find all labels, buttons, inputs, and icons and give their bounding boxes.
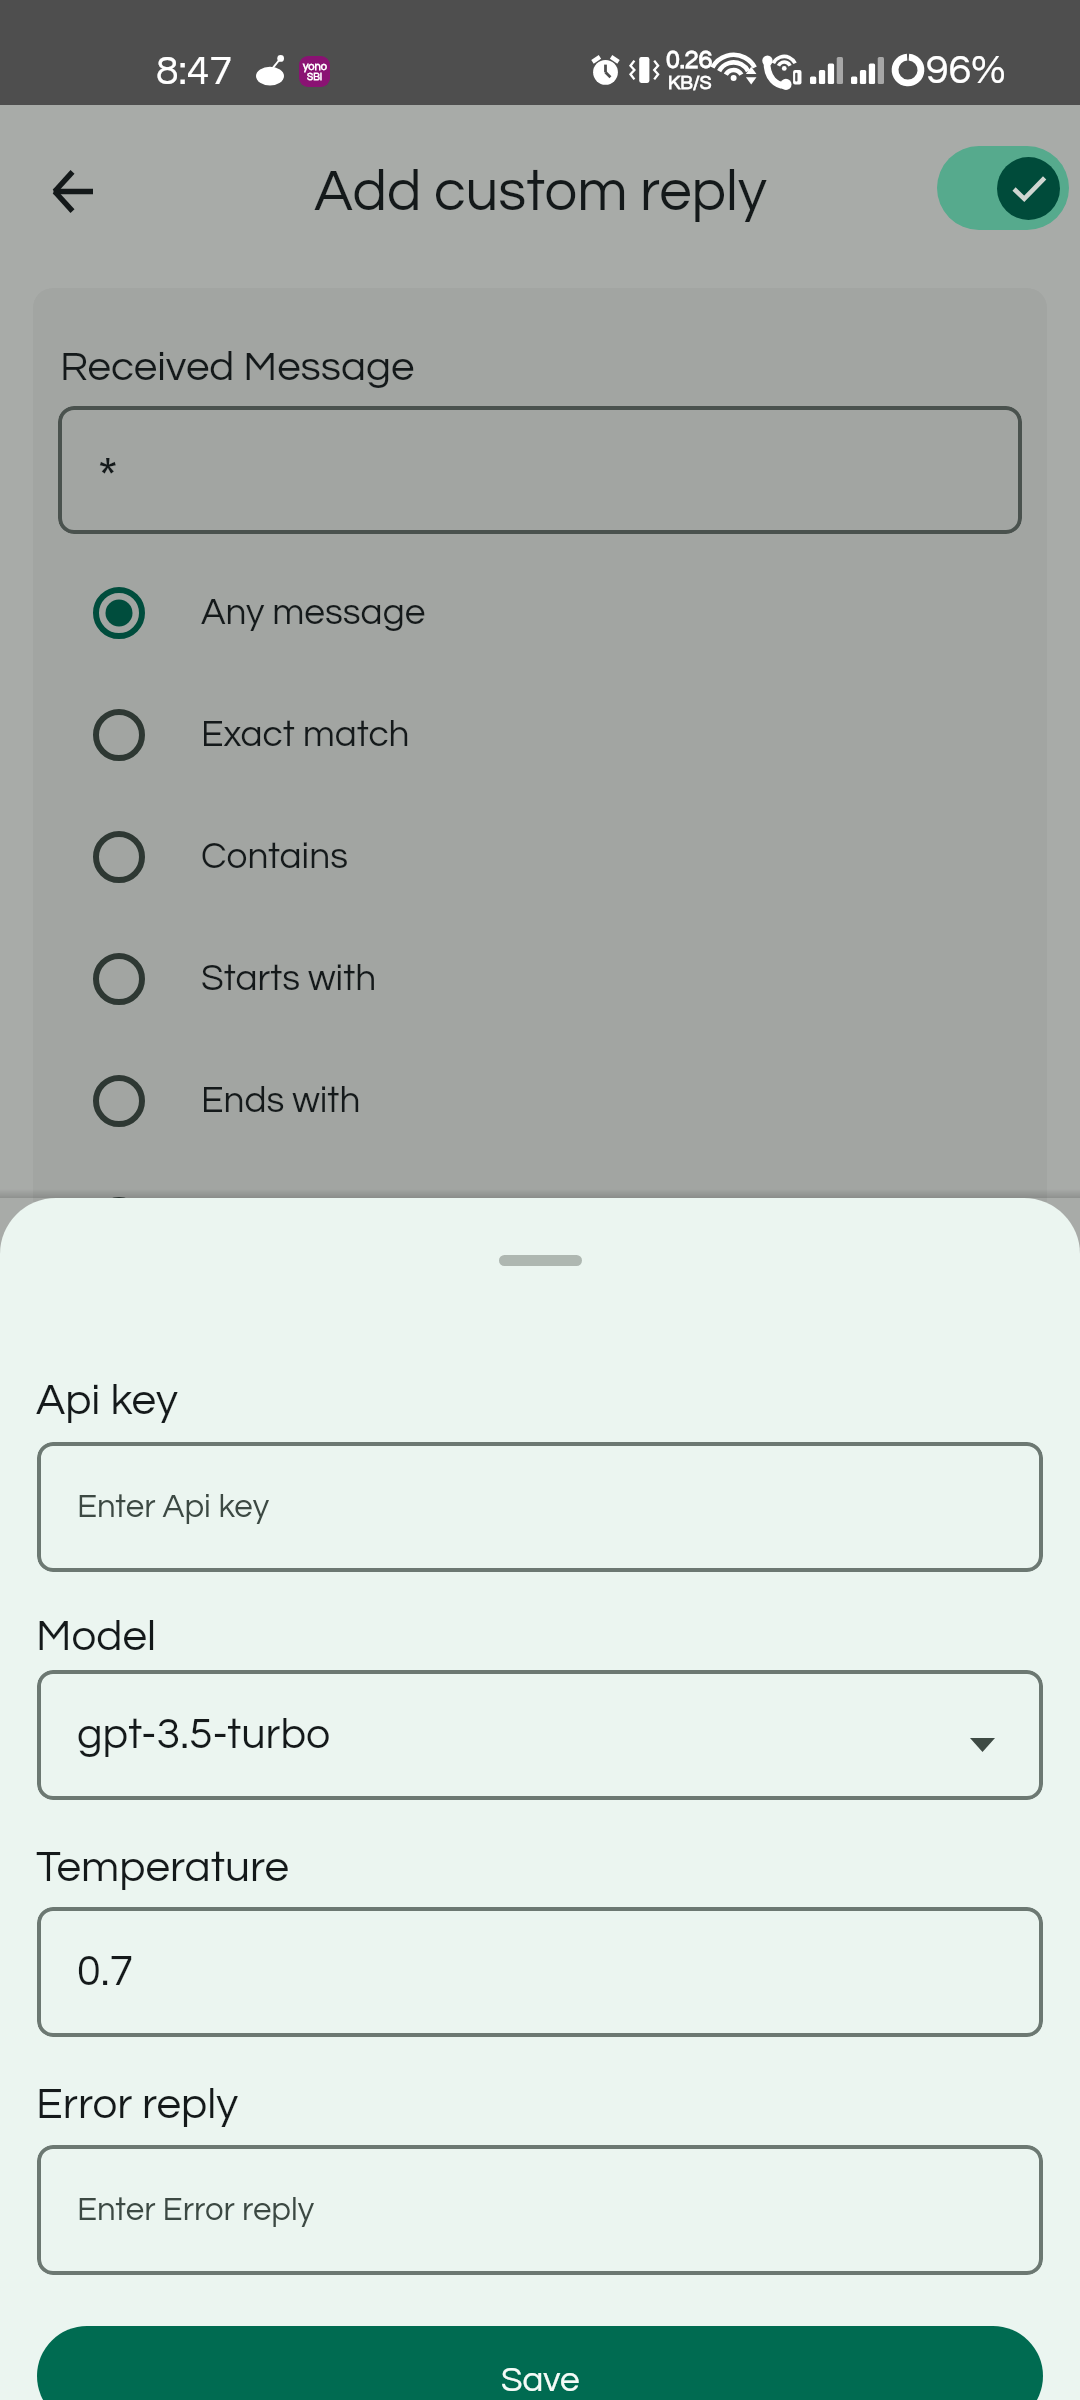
staticText: Model (36, 1614, 156, 1659)
staticText: 96% (926, 49, 1006, 91)
button[interactable]: Enable reply (937, 146, 1069, 230)
staticText: 0.7 (77, 1950, 134, 1994)
staticText: Add custom reply (314, 162, 767, 222)
staticText: Enter Api key (77, 1490, 270, 1524)
staticText: Save (501, 2362, 580, 2398)
button[interactable]: Exact match (33, 674, 1047, 796)
button[interactable]: gpt-3.5-turbo (37, 1670, 1043, 1800)
staticText: Error reply (36, 2082, 239, 2127)
button[interactable]: Save (37, 2326, 1043, 2400)
staticText: Received Message (60, 346, 415, 389)
button[interactable]: * (58, 406, 1022, 534)
button[interactable]: Starts with (33, 918, 1047, 1040)
staticText: Enter Error reply (77, 2193, 315, 2227)
staticText: Temperature (36, 1845, 290, 1890)
button[interactable]: Regex (33, 1162, 1047, 1248)
staticText: Exact match (201, 716, 410, 754)
button[interactable]: Enter Error reply (37, 2145, 1043, 2275)
staticText: * (97, 449, 119, 509)
staticText: 8:47 (156, 50, 232, 92)
staticText: Starts with (201, 960, 377, 998)
button[interactable]: Ends with (33, 1040, 1047, 1162)
staticText: KB/S (668, 73, 712, 93)
staticText: Any message (201, 594, 426, 632)
staticText: SBI (307, 72, 323, 82)
button[interactable]: Any message (33, 552, 1047, 674)
button[interactable]: 0.7 (37, 1907, 1043, 2037)
staticText: Ends with (201, 1082, 361, 1120)
staticText: 0.26 (666, 47, 713, 73)
staticText: yono (303, 61, 327, 72)
button[interactable]: Enter Api key (37, 1442, 1043, 1572)
button[interactable]: Contains (33, 796, 1047, 918)
button[interactable]: Back (26, 145, 118, 237)
staticText: Contains (201, 838, 348, 876)
staticText: Api key (36, 1378, 178, 1423)
staticText: gpt-3.5-turbo (77, 1713, 331, 1757)
